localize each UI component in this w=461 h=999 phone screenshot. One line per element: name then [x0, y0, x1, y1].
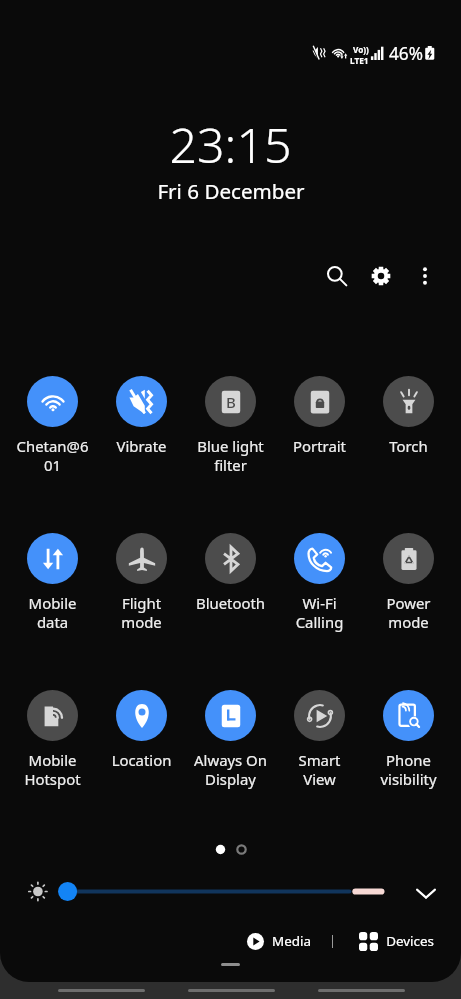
staticText: Always On Display [186, 750, 275, 789]
staticText: Phone visibility [364, 750, 453, 789]
button[interactable]: More options [403, 254, 447, 298]
button[interactable]: Settings [359, 254, 403, 298]
button[interactable]: Home [188, 989, 275, 992]
staticText: B [226, 392, 236, 412]
staticText: Location [97, 750, 186, 770]
staticText: Devices [386, 932, 434, 950]
button[interactable]: Mobile Hotspot [8, 690, 97, 789]
button[interactable]: Vibrate [97, 376, 186, 456]
staticText: 46% [389, 42, 423, 65]
button[interactable]: Bluetooth [186, 533, 275, 613]
button[interactable]: Always On Display [186, 690, 275, 789]
button[interactable]: Mobile data [8, 533, 97, 632]
staticText: Blue light filter [186, 436, 275, 475]
button[interactable]: Location [97, 690, 186, 770]
button[interactable]: Back [318, 989, 405, 992]
staticText: Wi-Fi Calling [275, 593, 364, 632]
staticText: LTE1 [350, 55, 369, 66]
button[interactable]: Search [315, 254, 359, 298]
staticText: Flight mode [97, 593, 186, 632]
staticText: Fri 6 December [157, 177, 305, 205]
staticText: Vibrate [97, 436, 186, 456]
button[interactable]: Flight mode [97, 533, 186, 632]
button[interactable]: Smart View [275, 690, 364, 789]
staticText: Smart View [275, 750, 364, 789]
staticText: Vo)) [353, 44, 369, 55]
button[interactable]: Media [234, 925, 332, 957]
button[interactable]: Brightness [0, 878, 461, 906]
button[interactable]: Recents [58, 989, 145, 992]
staticText: Bluetooth [186, 593, 275, 613]
button[interactable]: Portrait [275, 376, 364, 456]
staticText: Mobile Hotspot [8, 750, 97, 789]
button[interactable]: Phone visibility [364, 690, 453, 789]
staticText: Portrait [275, 436, 364, 456]
button[interactable]: B [186, 376, 275, 475]
button[interactable]: Wi-Fi Calling [275, 533, 364, 632]
button[interactable]: Power mode [364, 533, 453, 632]
button[interactable]: Chetan@6 01 [8, 376, 97, 475]
staticText: Power mode [364, 593, 453, 632]
button[interactable]: Torch [364, 376, 453, 456]
staticText: Mobile data [8, 593, 97, 632]
staticText: Chetan@6 01 [8, 436, 97, 475]
button[interactable]: Expand quick settings [407, 874, 445, 912]
staticText: Media [272, 932, 311, 950]
staticText: 23:15 [169, 111, 292, 177]
button[interactable]: Devices [333, 925, 434, 957]
staticText: Torch [364, 436, 453, 456]
